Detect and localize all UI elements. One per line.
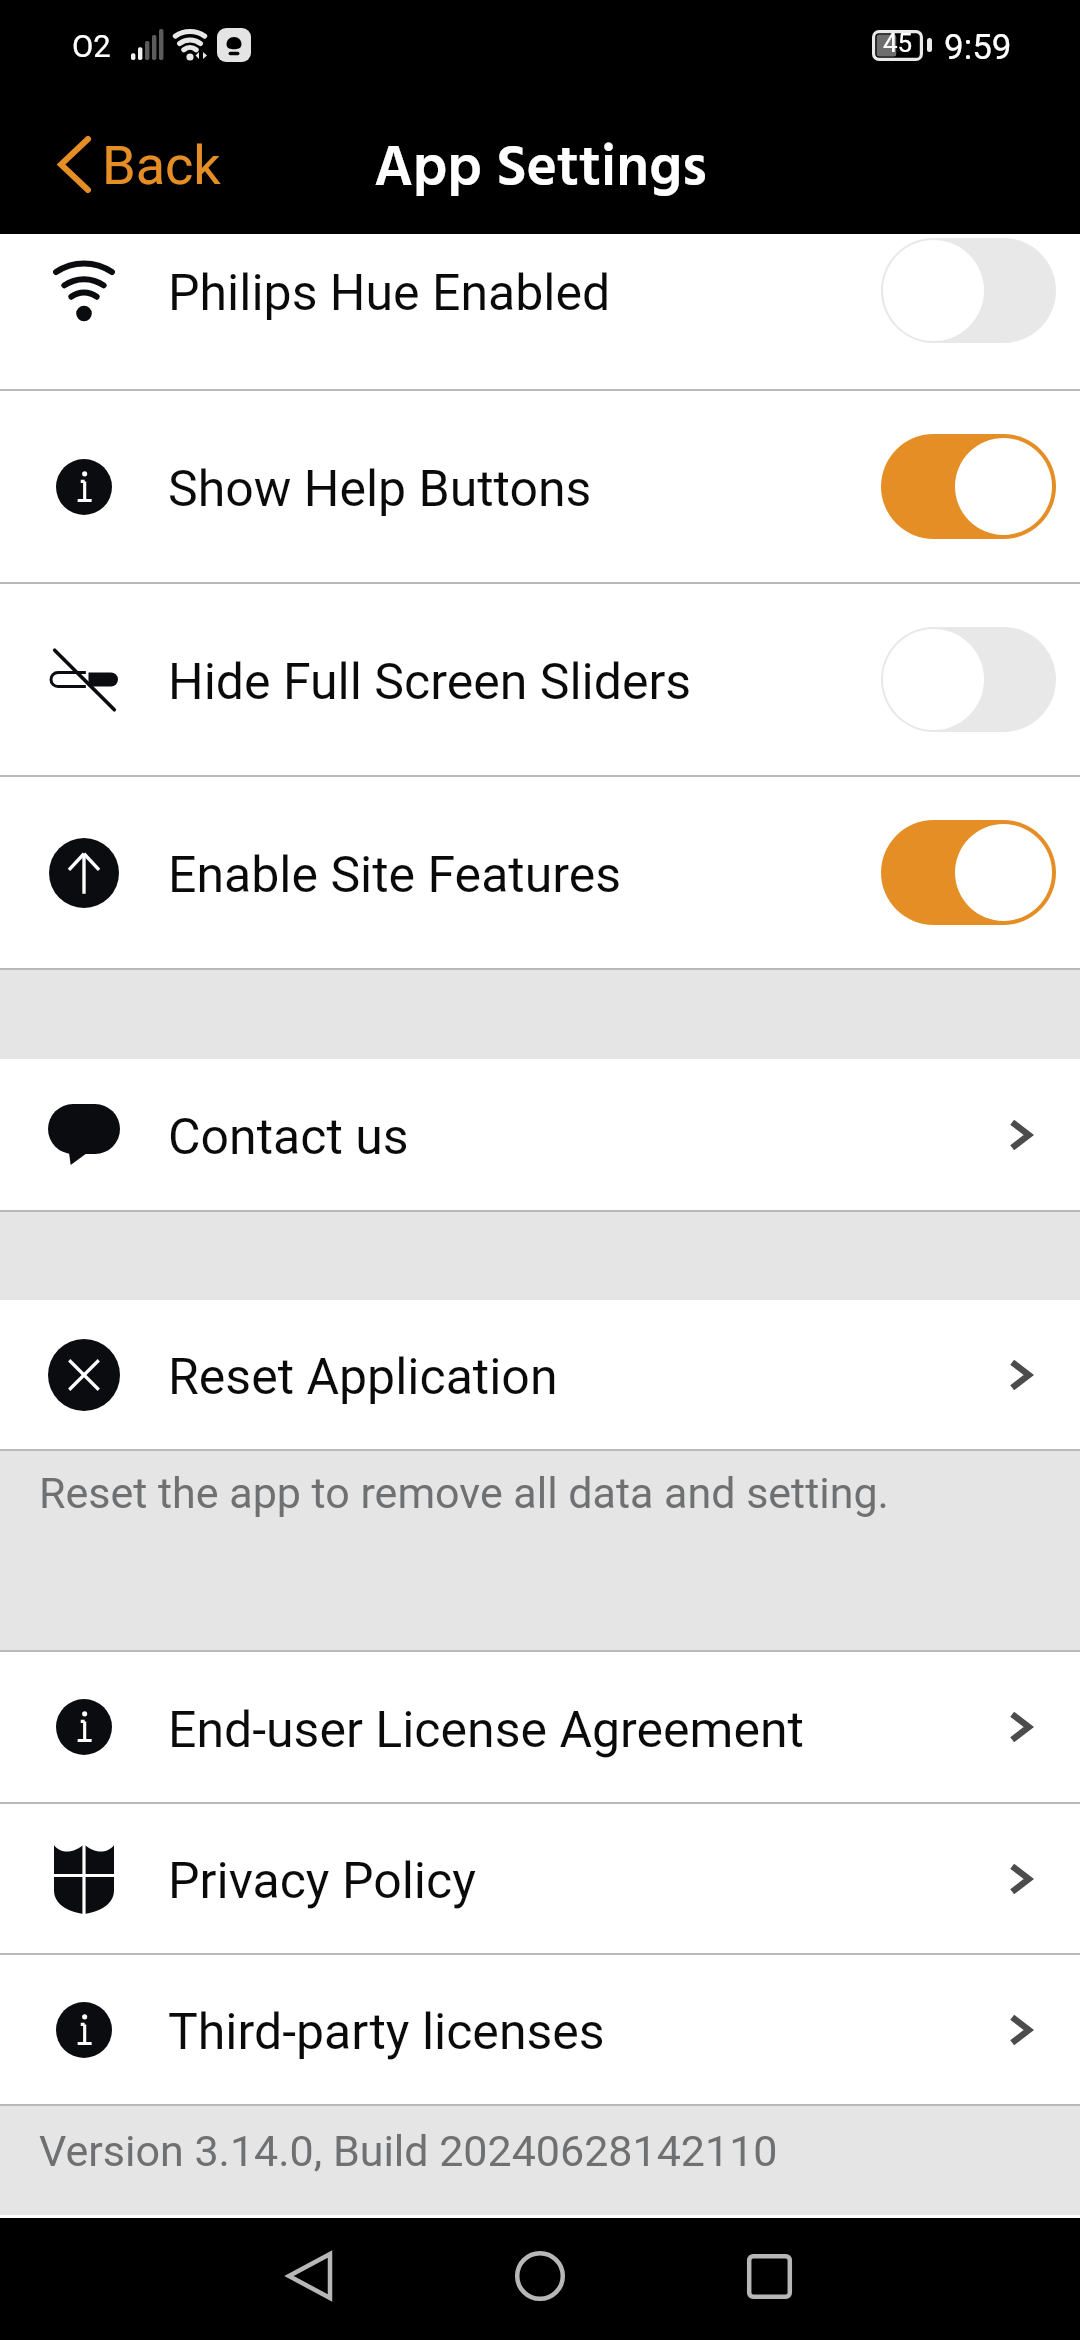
staticText: Hide Full Screen Sliders	[168, 653, 692, 712]
staticText: Privacy Policy	[168, 1852, 476, 1911]
button[interactable]: Switch off	[881, 627, 1056, 732]
staticText: Show Help Buttons	[168, 460, 592, 519]
button[interactable]: Reset Application	[0, 1300, 1080, 1449]
button[interactable]: Hide Full Screen Sliders	[0, 584, 1080, 775]
staticText: Third-party licenses	[168, 2003, 605, 2062]
button[interactable]: Switch on	[881, 820, 1056, 925]
button[interactable]: Recent apps	[714, 2221, 824, 2331]
staticText: Reset Application	[168, 1348, 558, 1407]
button[interactable]: Contact us	[0, 1059, 1080, 1210]
button[interactable]: Show Help Buttons	[0, 391, 1080, 582]
staticText: O2	[72, 28, 111, 64]
button[interactable]: Switch on	[881, 434, 1056, 539]
staticText: Reset the app to remove all data and set…	[39, 1468, 889, 1518]
staticText: Contact us	[168, 1108, 409, 1167]
staticText: Back	[102, 134, 221, 197]
button[interactable]: Back	[254, 2221, 364, 2331]
button[interactable]: Home	[485, 2221, 595, 2331]
button[interactable]: Switch off	[881, 238, 1056, 343]
button[interactable]: End-user License Agreement	[0, 1652, 1080, 1802]
button[interactable]: Back	[42, 123, 235, 206]
staticText: Version 3.14.0, Build 20240628142110	[39, 2126, 778, 2176]
button[interactable]: Philips Hue Enabled	[0, 234, 1080, 389]
button[interactable]: Privacy Policy	[0, 1804, 1080, 1953]
staticText: 45	[883, 28, 913, 58]
staticText: Enable Site Features	[168, 846, 622, 905]
button[interactable]: Third-party licenses	[0, 1955, 1080, 2104]
staticText: End-user License Agreement	[168, 1701, 804, 1760]
staticText: 9:59	[944, 27, 1012, 68]
button[interactable]: Enable Site Features	[0, 777, 1080, 968]
staticText: App Settings	[374, 124, 707, 217]
staticText: Philips Hue Enabled	[168, 264, 611, 323]
